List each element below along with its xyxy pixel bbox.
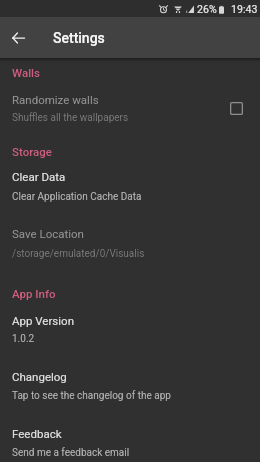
staticText: Changelog bbox=[12, 370, 67, 383]
button[interactable] bbox=[0, 365, 260, 405]
staticText: Feedback bbox=[12, 427, 62, 440]
staticText: Tap to see the changelog of the app bbox=[12, 390, 171, 402]
button[interactable] bbox=[0, 422, 260, 462]
button[interactable]: Randomize walls checkbox bbox=[223, 95, 249, 121]
staticText: Storage bbox=[12, 145, 52, 158]
button[interactable] bbox=[0, 165, 260, 206]
button[interactable]: Back bbox=[0, 20, 36, 56]
staticText: Clear Application Cache Data bbox=[12, 191, 142, 203]
staticText: Settings bbox=[53, 30, 105, 46]
staticText: Shuffles all the wallpapers bbox=[12, 112, 129, 124]
staticText: App Version bbox=[12, 314, 74, 327]
staticText: Send me a feedback email bbox=[12, 447, 130, 459]
staticText: Save Location bbox=[12, 227, 84, 240]
button[interactable] bbox=[0, 222, 260, 262]
button[interactable] bbox=[0, 88, 260, 124]
staticText: 1.0.2 bbox=[12, 333, 35, 345]
staticText: App Info bbox=[12, 287, 56, 300]
staticText: 19:43 bbox=[231, 3, 258, 15]
staticText: Randomize walls bbox=[12, 93, 99, 106]
staticText: Walls bbox=[12, 66, 40, 79]
staticText: /storage/emulated/0/Visualis bbox=[12, 248, 145, 260]
staticText: 26% bbox=[197, 3, 217, 15]
staticText: Clear Data bbox=[12, 170, 66, 183]
button[interactable] bbox=[0, 309, 260, 348]
